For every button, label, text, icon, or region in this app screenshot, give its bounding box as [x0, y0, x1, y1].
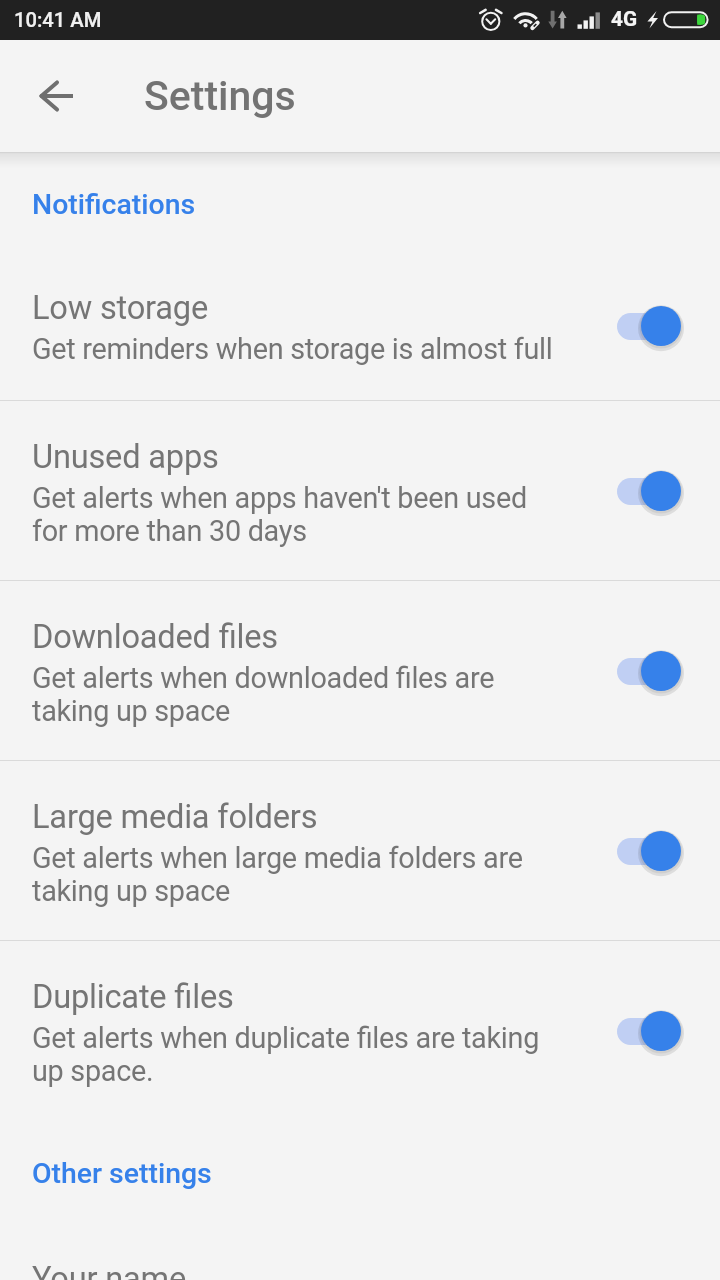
- staticText: Get alerts when apps haven't been used f…: [32, 481, 527, 548]
- button[interactable]: Duplicate files: [0, 941, 720, 1120]
- staticText: 10:41 AM: [14, 8, 102, 32]
- staticText: Notifications: [32, 188, 196, 221]
- button[interactable]: Toggle setting: [617, 471, 681, 511]
- staticText: Downloaded files: [32, 618, 278, 656]
- staticText: Get alerts when downloaded files are tak…: [32, 661, 495, 728]
- button[interactable]: Navigate up: [8, 48, 104, 144]
- staticText: Duplicate files: [32, 978, 234, 1016]
- staticText: Large media folders: [32, 798, 318, 836]
- staticText: Other settings: [32, 1157, 212, 1190]
- staticText: Low storage: [32, 289, 208, 327]
- button[interactable]: Toggle setting: [617, 831, 681, 871]
- button[interactable]: Toggle setting: [617, 651, 681, 691]
- staticText: Your name: [32, 1260, 187, 1280]
- button[interactable]: Your name: [0, 1223, 720, 1280]
- staticText: Unused apps: [32, 438, 219, 476]
- button[interactable]: Large media folders: [0, 761, 720, 940]
- staticText: Settings: [144, 72, 296, 120]
- staticText: Get alerts when duplicate files are taki…: [32, 1021, 540, 1088]
- staticText: Get alerts when large media folders are …: [32, 841, 523, 908]
- button[interactable]: Toggle setting: [617, 1011, 681, 1051]
- button[interactable]: Low storage: [0, 252, 720, 400]
- staticText: 4G: [611, 7, 638, 31]
- button[interactable]: Downloaded files: [0, 581, 720, 760]
- staticText: Get reminders when storage is almost ful…: [32, 332, 553, 366]
- button[interactable]: Unused apps: [0, 401, 720, 580]
- button[interactable]: Toggle setting: [617, 306, 681, 346]
